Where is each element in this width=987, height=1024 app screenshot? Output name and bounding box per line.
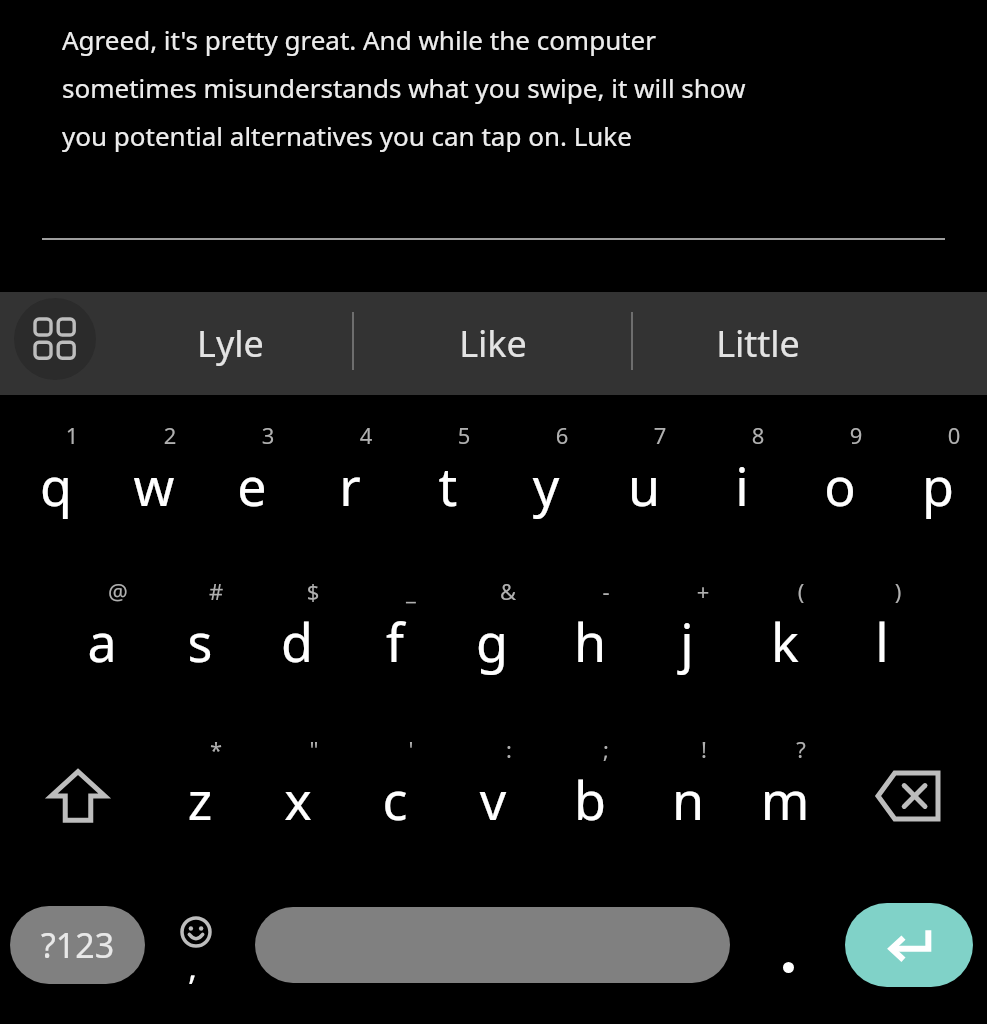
button[interactable]: # [151, 568, 249, 718]
button[interactable]: Period [748, 905, 828, 985]
staticText: + [654, 576, 752, 610]
staticText: : [460, 734, 558, 768]
button[interactable]: 3 [203, 412, 301, 562]
staticText: Little [716, 319, 800, 368]
button[interactable]: Shift [28, 742, 128, 850]
staticText: b [541, 764, 639, 844]
button[interactable]: + [638, 568, 736, 718]
button[interactable]: Little [640, 292, 875, 395]
staticText: 2 [121, 420, 219, 454]
button[interactable]: Emoji and comma [160, 900, 240, 992]
staticText: _ [362, 576, 460, 610]
button[interactable]: 9 [791, 412, 889, 562]
staticText: you potential alternatives you can tap o… [62, 118, 632, 153]
staticText: Agreed, it's pretty great. And while the… [62, 22, 657, 57]
staticText: j [638, 606, 736, 686]
staticText: 7 [611, 420, 709, 454]
button[interactable]: Backspace [858, 742, 958, 850]
staticText: p [889, 450, 987, 530]
staticText: u [595, 450, 693, 530]
staticText: s [151, 606, 249, 686]
staticText: - [557, 576, 655, 610]
button[interactable]: $ [248, 568, 346, 718]
staticText: ? [752, 734, 850, 768]
button[interactable]: 1 [7, 412, 105, 562]
staticText: f [346, 606, 444, 686]
staticText: c [346, 764, 444, 844]
button[interactable]: ' [346, 726, 444, 876]
button[interactable]: Like [360, 292, 625, 395]
staticText: & [459, 576, 557, 610]
staticText: ! [655, 734, 753, 768]
button[interactable]: Enter [845, 903, 973, 987]
staticText: k [736, 606, 834, 686]
button[interactable]: ; [541, 726, 639, 876]
staticText: x [249, 764, 347, 844]
staticText: r [301, 450, 399, 530]
button[interactable]: 6 [497, 412, 595, 562]
staticText: l [833, 606, 931, 686]
staticText: n [639, 764, 737, 844]
staticText: m [736, 764, 834, 844]
staticText: Like [459, 319, 527, 368]
staticText: ?123 [41, 922, 115, 968]
staticText: z [151, 764, 249, 844]
button[interactable]: Lyle [110, 292, 350, 395]
staticText: o [791, 450, 889, 530]
staticText: v [444, 764, 542, 844]
staticText: 8 [709, 420, 807, 454]
button[interactable]: 4 [301, 412, 399, 562]
staticText: h [541, 606, 639, 686]
button[interactable]: @ [53, 568, 151, 718]
staticText: 1 [23, 420, 121, 454]
staticText: w [105, 450, 203, 530]
button[interactable]: " [249, 726, 347, 876]
staticText: * [167, 734, 265, 768]
button[interactable]: ) [833, 568, 931, 718]
staticText: ; [557, 734, 655, 768]
staticText: g [443, 606, 541, 686]
staticText: e [203, 450, 301, 530]
button[interactable]: - [541, 568, 639, 718]
button[interactable]: Toolbar [14, 298, 96, 380]
button[interactable]: * [151, 726, 249, 876]
staticText: ( [752, 576, 850, 610]
button[interactable]: 8 [693, 412, 791, 562]
staticText: Lyle [197, 319, 264, 368]
button[interactable]: ( [736, 568, 834, 718]
staticText: q [7, 450, 105, 530]
staticText: 6 [513, 420, 611, 454]
staticText: d [248, 606, 346, 686]
button[interactable]: 5 [399, 412, 497, 562]
staticText: 3 [219, 420, 317, 454]
button[interactable]: _ [346, 568, 444, 718]
button[interactable]: ? [736, 726, 834, 876]
button[interactable]: 0 [889, 412, 987, 562]
staticText: , [188, 944, 198, 990]
staticText: 5 [415, 420, 513, 454]
button[interactable]: 7 [595, 412, 693, 562]
button[interactable]: ! [639, 726, 737, 876]
staticText: a [53, 606, 151, 686]
staticText: 4 [317, 420, 415, 454]
staticText: t [399, 450, 497, 530]
staticText: y [497, 450, 595, 530]
staticText: sometimes misunderstands what you swipe,… [62, 70, 746, 105]
staticText: ) [849, 576, 947, 610]
button[interactable]: : [444, 726, 542, 876]
staticText: 9 [807, 420, 905, 454]
button[interactable]: ?123 [10, 906, 145, 984]
staticText: @ [69, 576, 167, 610]
staticText: ' [362, 734, 460, 768]
button[interactable]: & [443, 568, 541, 718]
staticText: $ [264, 576, 362, 610]
staticText: " [265, 734, 363, 768]
staticText: 0 [905, 420, 987, 454]
button[interactable]: 2 [105, 412, 203, 562]
staticText: # [167, 576, 265, 610]
button[interactable]: Space [255, 907, 730, 983]
staticText: i [693, 450, 791, 530]
